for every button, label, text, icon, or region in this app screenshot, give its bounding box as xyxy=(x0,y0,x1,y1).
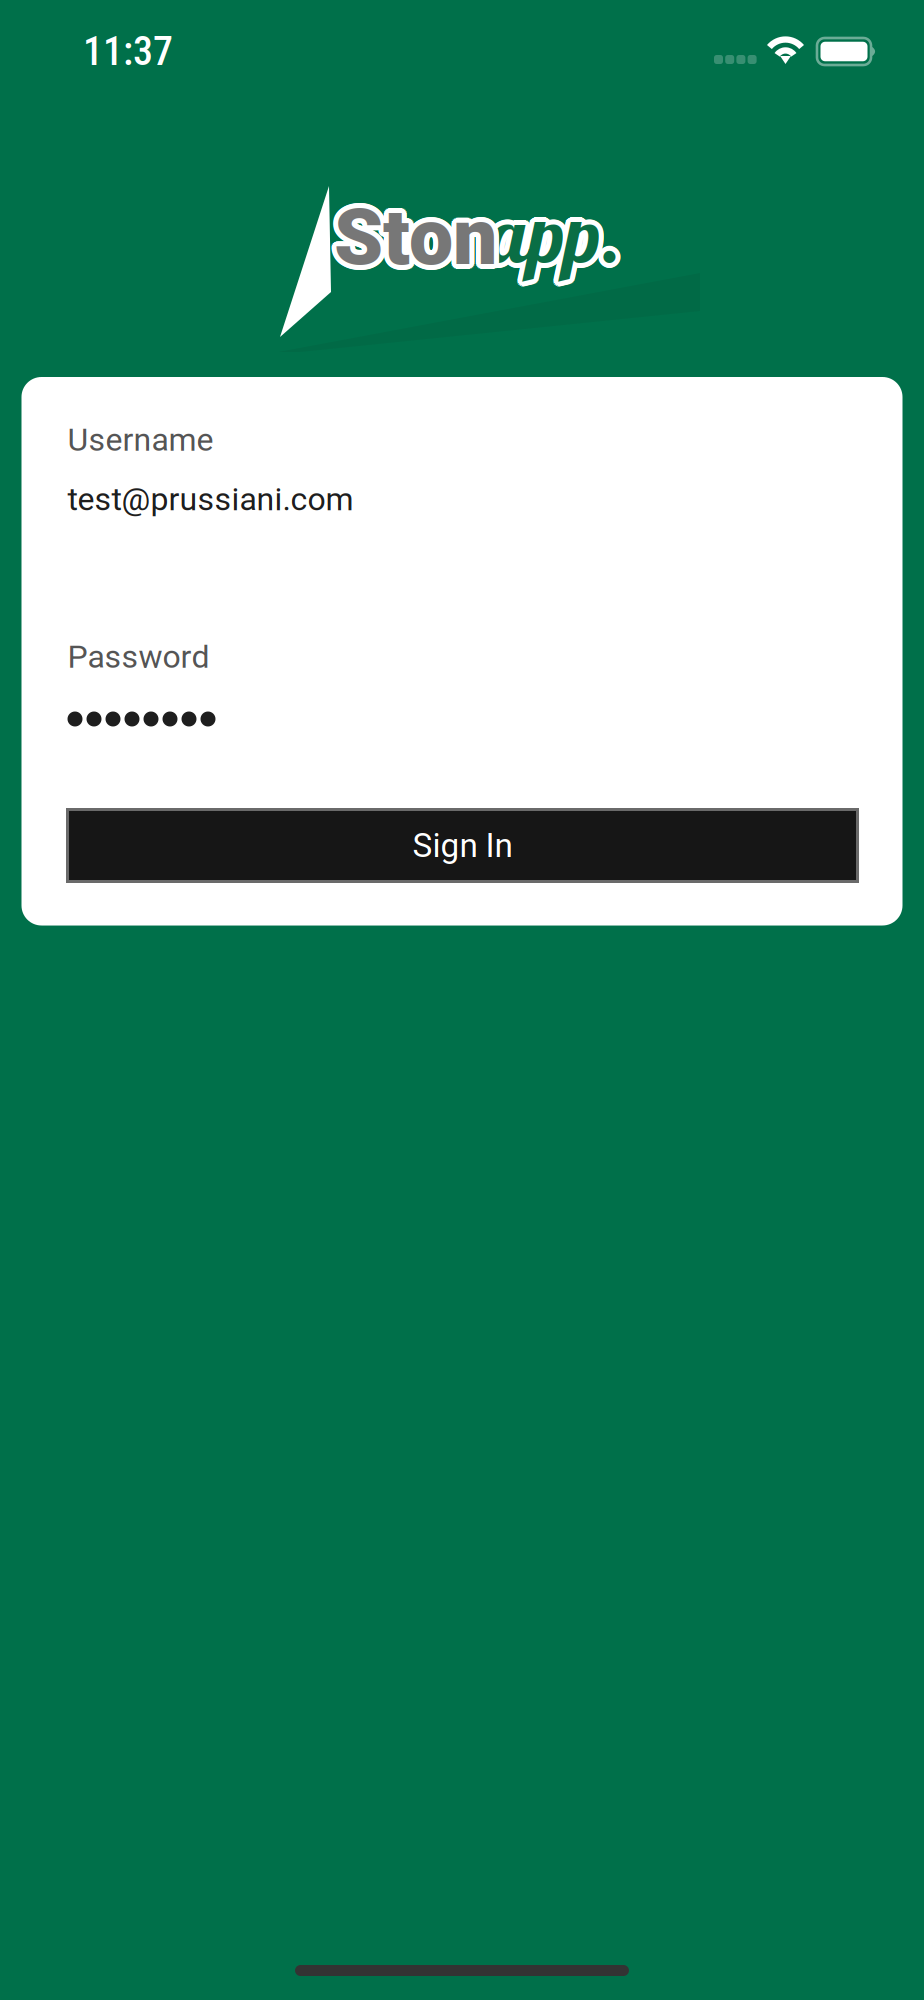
staticText: app. xyxy=(484,185,616,280)
staticText: Ston xyxy=(338,188,501,280)
staticText: app. xyxy=(491,183,623,278)
staticText: Ston xyxy=(329,191,492,283)
staticText: Ston xyxy=(331,187,494,279)
staticText: app. xyxy=(485,184,617,279)
staticText: 11:37 xyxy=(83,28,173,75)
staticText: app. xyxy=(493,184,625,279)
staticText: Ston xyxy=(339,189,502,281)
staticText: app. xyxy=(488,192,620,287)
staticText: Ston xyxy=(329,193,492,285)
staticText: Ston xyxy=(334,191,497,283)
staticText: Ston xyxy=(339,193,502,285)
staticText: Ston xyxy=(339,191,502,283)
staticText: app. xyxy=(486,191,618,286)
staticText: Ston xyxy=(331,195,494,287)
staticText: app. xyxy=(485,190,617,285)
staticText: app. xyxy=(490,182,622,277)
staticText: app. xyxy=(494,189,626,284)
staticText: Ston xyxy=(335,196,498,288)
staticText: app. xyxy=(486,183,618,278)
staticText: app. xyxy=(484,189,616,284)
staticText: app. xyxy=(484,187,616,282)
staticText: app. xyxy=(494,187,626,282)
staticText: Ston xyxy=(338,194,501,286)
staticText: Ston xyxy=(333,186,496,278)
staticText: test@prussiani.com xyxy=(67,480,353,518)
staticText: app. xyxy=(493,190,625,285)
staticText: Password xyxy=(67,638,209,675)
staticText: Sign In xyxy=(412,826,512,865)
staticText: app. xyxy=(489,187,621,282)
staticText: Ston xyxy=(330,188,493,280)
staticText: app. xyxy=(490,192,622,287)
staticText: app. xyxy=(491,191,623,286)
staticText: Username xyxy=(67,421,213,458)
staticText: app. xyxy=(494,185,626,280)
button[interactable]: Sign In xyxy=(67,809,857,881)
staticText: Ston xyxy=(333,196,496,288)
staticText: Ston xyxy=(336,195,499,287)
staticText: Ston xyxy=(330,194,493,286)
staticText: Ston xyxy=(329,189,492,281)
staticText: Ston xyxy=(336,187,499,279)
staticText: app. xyxy=(488,182,620,277)
staticText: Ston xyxy=(335,186,498,278)
